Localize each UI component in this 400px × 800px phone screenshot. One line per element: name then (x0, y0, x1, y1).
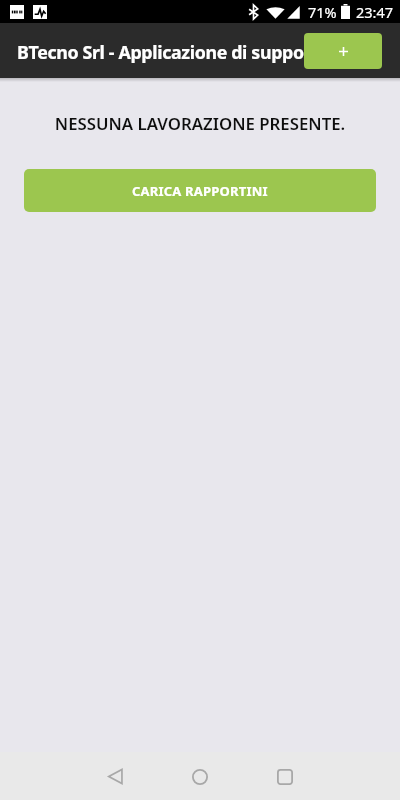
button[interactable]: Recents (262, 754, 307, 799)
staticText: 23:47 (356, 2, 394, 22)
button[interactable]: Back (93, 754, 138, 799)
button[interactable]: Add (304, 33, 382, 69)
staticText: 71% (308, 2, 337, 22)
staticText: CARICA RAPPORTINI (132, 182, 268, 200)
staticText: BTecno Srl - Applicazione di supporto (17, 40, 330, 64)
staticText: NESSUNA LAVORAZIONE PRESENTE. (0, 112, 400, 135)
button[interactable]: Home (177, 754, 222, 799)
button[interactable]: CARICA RAPPORTINI (24, 169, 376, 212)
